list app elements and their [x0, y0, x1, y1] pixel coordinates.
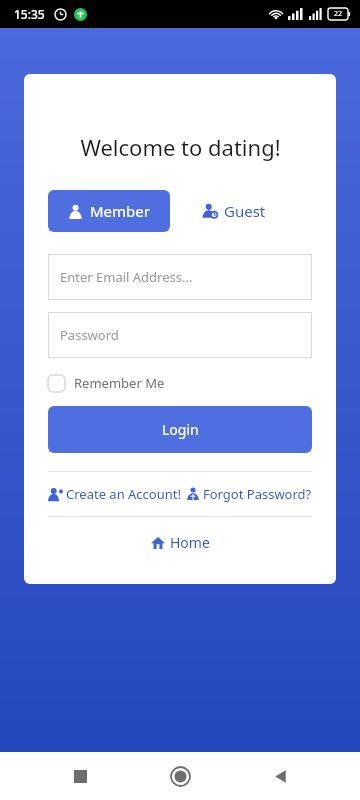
button[interactable]: Login	[48, 406, 312, 453]
button[interactable]: Remember Me	[48, 374, 312, 392]
button[interactable]: Home	[160, 756, 200, 796]
staticText: Enter Email Address...	[60, 268, 193, 286]
staticText: Create an Account!	[66, 485, 181, 503]
button[interactable]: Enter Email Address...	[48, 254, 312, 300]
button[interactable]: Back	[260, 756, 300, 796]
staticText: Home	[170, 533, 210, 552]
staticText: Welcome to dating!	[80, 132, 281, 162]
button[interactable]: Member	[48, 190, 170, 232]
staticText: 22	[334, 9, 343, 19]
button[interactable]: Guest	[196, 193, 272, 229]
staticText: Guest	[224, 201, 266, 221]
button[interactable]: Recent apps	[60, 756, 100, 796]
button[interactable]: Forgot Password?	[186, 485, 312, 503]
staticText: Password	[60, 326, 119, 344]
staticText: Remember Me	[74, 374, 165, 392]
button[interactable]: Home	[147, 529, 214, 556]
button[interactable]: Password	[48, 312, 312, 358]
staticText: 15:35	[14, 6, 45, 22]
staticText: Login	[162, 420, 199, 439]
staticText: Member	[90, 201, 150, 221]
staticText: Forgot Password?	[203, 485, 312, 503]
button[interactable]: Create an Account!	[48, 485, 181, 503]
